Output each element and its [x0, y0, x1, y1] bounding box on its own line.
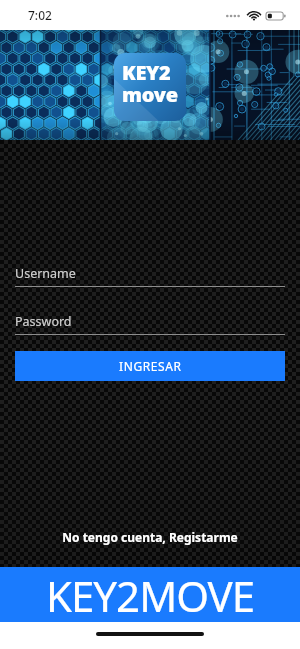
button[interactable]: INGRESAR: [15, 351, 285, 381]
button[interactable]: Password: [15, 313, 285, 335]
staticText: KEY2MOVE: [46, 567, 255, 622]
staticText: No tengo cuenta, Registarme: [62, 529, 238, 545]
staticText: Username: [15, 265, 76, 282]
staticText: move: [122, 81, 178, 108]
button[interactable]: KEY2MOVE: [0, 567, 300, 622]
staticText: KEY2: [122, 59, 171, 86]
staticText: 7:02: [28, 7, 52, 23]
staticText: Password: [15, 313, 72, 330]
staticText: INGRESAR: [119, 358, 182, 374]
button[interactable]: No tengo cuenta, Registarme: [0, 529, 300, 545]
button[interactable]: Username: [15, 265, 285, 287]
